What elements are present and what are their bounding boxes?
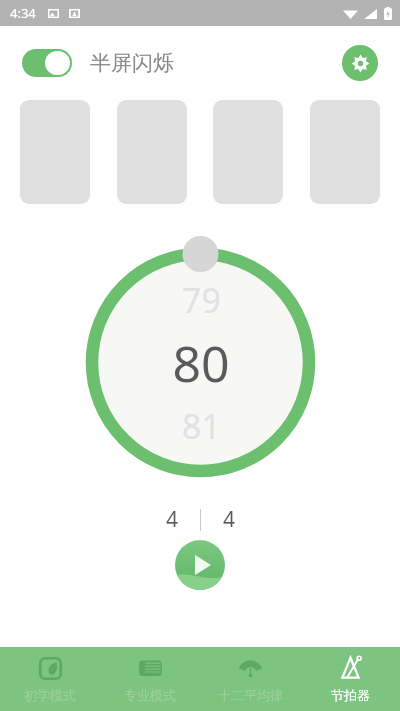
button[interactable]: 4 [144, 505, 200, 534]
button[interactable]: 十二平均律 [200, 647, 300, 711]
staticText: 十二平均律 [218, 687, 283, 703]
button[interactable]: 节拍器 [300, 647, 400, 711]
button[interactable]: 4 [201, 505, 257, 534]
button[interactable]: Play [175, 540, 225, 590]
staticText: 80 [172, 329, 230, 397]
staticText: 专业模式 [124, 687, 176, 703]
button[interactable]: 初学模式 [0, 647, 100, 711]
staticText: 半屏闪烁 [90, 50, 174, 76]
staticText: 节拍器 [331, 687, 370, 703]
button[interactable]: Settings [342, 45, 378, 81]
staticText: 4 [166, 505, 179, 534]
button[interactable]: Tempo dial [78, 240, 323, 485]
staticText: 4:34 [10, 4, 36, 22]
staticText: 初学模式 [24, 687, 76, 703]
button[interactable]: 半屏闪烁开关 [22, 49, 72, 77]
staticText: 79 [182, 277, 221, 323]
staticText: 4 [223, 505, 236, 534]
staticText: 81 [182, 403, 221, 449]
button[interactable]: 专业模式 [100, 647, 200, 711]
